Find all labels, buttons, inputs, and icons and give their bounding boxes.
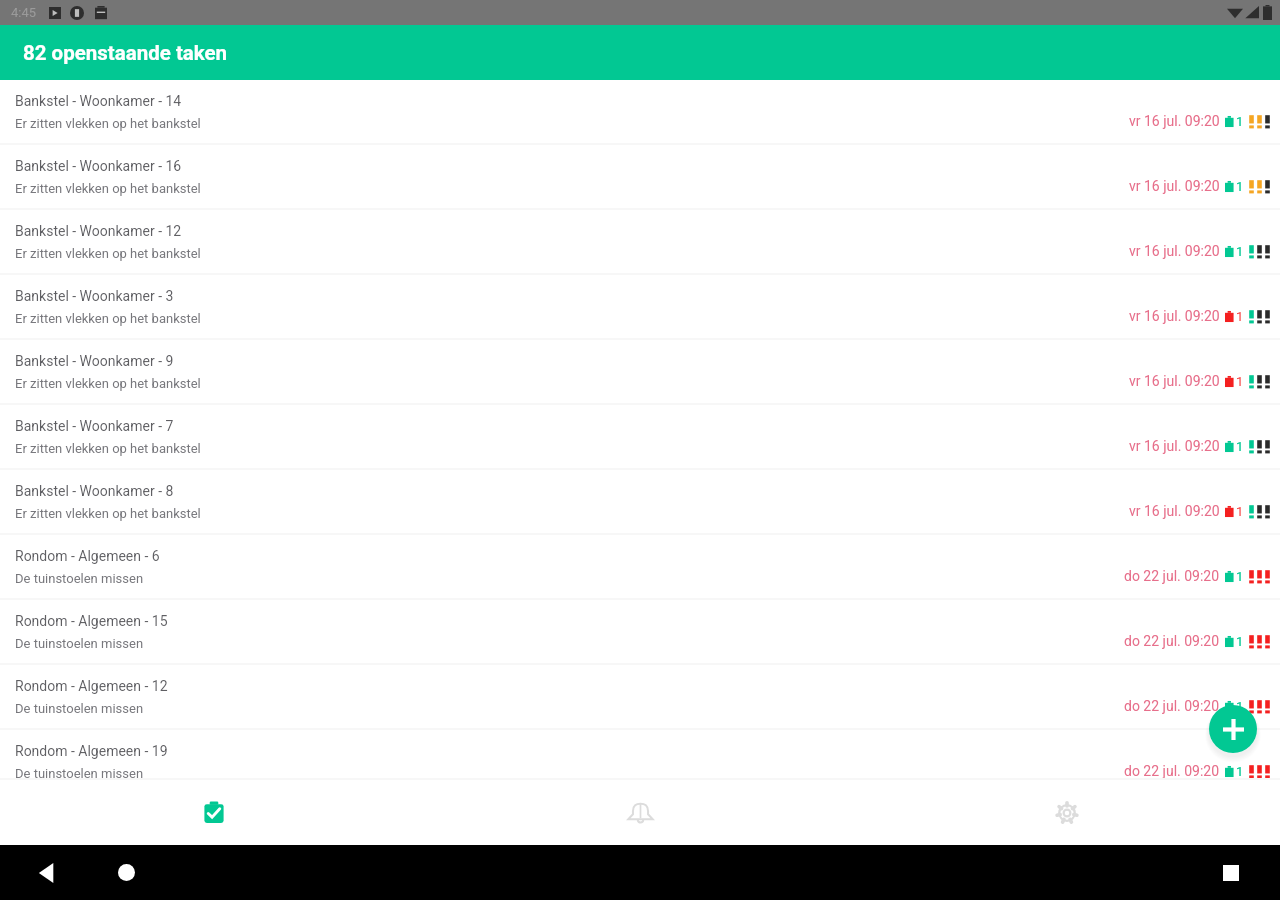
staticText: vr 16 jul. 09:20 — [1129, 373, 1220, 389]
staticText: 82 openstaande taken — [23, 41, 228, 65]
staticText: De tuinstoelen missen — [15, 571, 144, 586]
staticText: Er zitten vlekken op het bankstel — [15, 506, 201, 521]
button[interactable]: Meldingen — [593, 780, 688, 845]
button[interactable]: Rondom - Algemeen - 15 — [0, 600, 1280, 665]
button[interactable]: Instellingen — [1019, 780, 1114, 845]
staticText: 1 — [1236, 374, 1244, 389]
staticText: 1 — [1236, 244, 1244, 259]
button[interactable]: 82 openstaande taken — [0, 25, 1280, 80]
staticText: vr 16 jul. 09:20 — [1129, 178, 1220, 194]
button[interactable]: Bankstel - Woonkamer - 3 — [0, 275, 1280, 340]
staticText: Er zitten vlekken op het bankstel — [15, 376, 201, 391]
staticText: Rondom - Algemeen - 6 — [15, 548, 160, 564]
staticText: Bankstel - Woonkamer - 9 — [15, 353, 174, 369]
staticText: do 22 jul. 09:20 — [1124, 763, 1220, 779]
staticText: do 22 jul. 09:20 — [1124, 568, 1220, 584]
staticText: Bankstel - Woonkamer - 12 — [15, 223, 182, 239]
button[interactable]: Bankstel - Woonkamer - 7 — [0, 405, 1280, 470]
staticText: 1 — [1236, 179, 1244, 194]
staticText: Er zitten vlekken op het bankstel — [15, 441, 201, 456]
staticText: 1 — [1236, 634, 1244, 649]
staticText: vr 16 jul. 09:20 — [1129, 308, 1220, 324]
button[interactable]: Rondom - Algemeen - 6 — [0, 535, 1280, 600]
staticText: 1 — [1236, 699, 1244, 714]
staticText: Bankstel - Woonkamer - 14 — [15, 93, 182, 109]
staticText: 1 — [1236, 569, 1244, 584]
staticText: 1 — [1236, 439, 1244, 454]
staticText: Rondom - Algemeen - 12 — [15, 678, 168, 694]
button[interactable]: Nieuwe taak toevoegen — [1209, 705, 1257, 753]
staticText: 1 — [1236, 309, 1244, 324]
staticText: 1 — [1236, 114, 1244, 129]
staticText: Bankstel - Woonkamer - 16 — [15, 158, 182, 174]
staticText: vr 16 jul. 09:20 — [1129, 438, 1220, 454]
staticText: do 22 jul. 09:20 — [1124, 698, 1220, 714]
staticText: Bankstel - Woonkamer - 7 — [15, 418, 174, 434]
button[interactable]: Bankstel - Woonkamer - 12 — [0, 210, 1280, 275]
staticText: Rondom - Algemeen - 15 — [15, 613, 168, 629]
staticText: De tuinstoelen missen — [15, 636, 144, 651]
staticText: 4:45 — [11, 5, 37, 20]
staticText: Er zitten vlekken op het bankstel — [15, 246, 201, 261]
staticText: 1 — [1236, 504, 1244, 519]
staticText: 1 — [1236, 764, 1244, 779]
staticText: Er zitten vlekken op het bankstel — [15, 116, 201, 131]
button[interactable]: Bankstel - Woonkamer - 14 — [0, 80, 1280, 145]
staticText: Er zitten vlekken op het bankstel — [15, 181, 201, 196]
staticText: De tuinstoelen missen — [15, 701, 144, 716]
staticText: Rondom - Algemeen - 19 — [15, 743, 168, 759]
button[interactable]: Bankstel - Woonkamer - 8 — [0, 470, 1280, 535]
staticText: Bankstel - Woonkamer - 3 — [15, 288, 174, 304]
button[interactable]: Taken — [166, 780, 261, 845]
staticText: vr 16 jul. 09:20 — [1129, 503, 1220, 519]
staticText: do 22 jul. 09:20 — [1124, 633, 1220, 649]
button[interactable]: Rondom - Algemeen - 19 — [0, 730, 1280, 780]
staticText: Er zitten vlekken op het bankstel — [15, 311, 201, 326]
button[interactable]: Terug — [38, 863, 56, 883]
button[interactable]: Bankstel - Woonkamer - 9 — [0, 340, 1280, 405]
staticText: Bankstel - Woonkamer - 8 — [15, 483, 174, 499]
button[interactable]: Rondom - Algemeen - 12 — [0, 665, 1280, 730]
button[interactable]: Bankstel - Woonkamer - 16 — [0, 145, 1280, 210]
button[interactable]: Home — [118, 864, 135, 881]
staticText: vr 16 jul. 09:20 — [1129, 243, 1220, 259]
staticText: vr 16 jul. 09:20 — [1129, 113, 1220, 129]
staticText: De tuinstoelen missen — [15, 766, 144, 780]
